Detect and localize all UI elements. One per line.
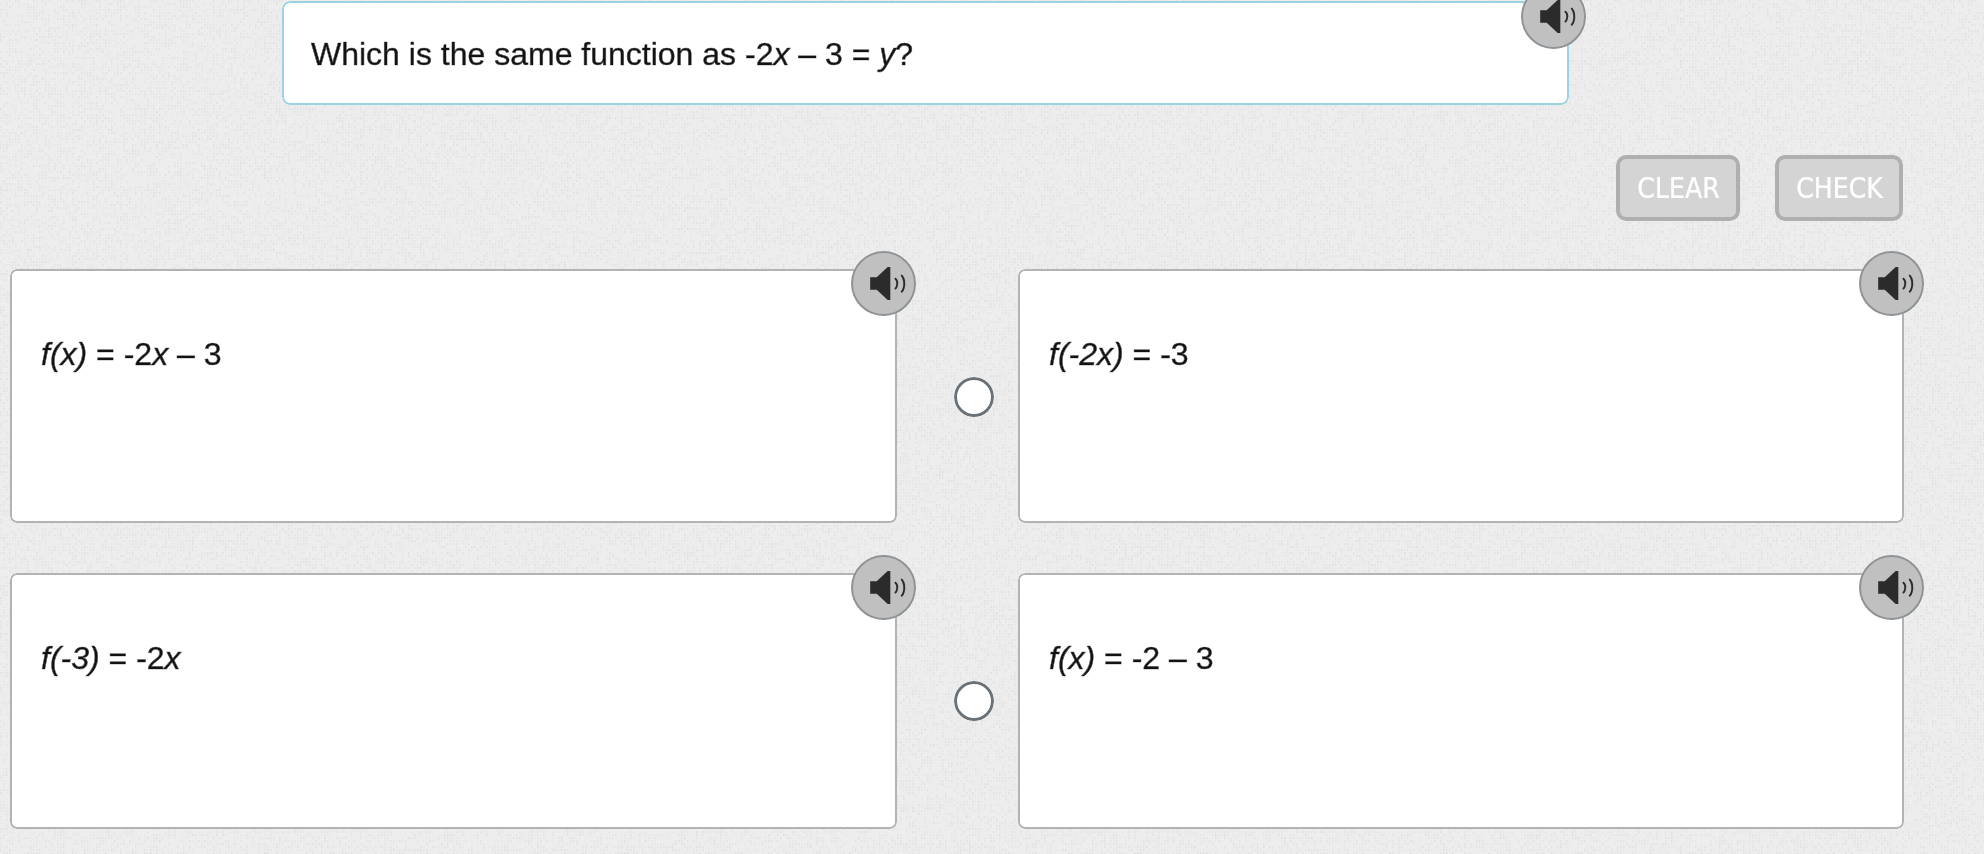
button[interactable]: Play audio [1859, 555, 1924, 620]
staticText: f(x) = -2x – 3 [41, 336, 222, 372]
staticText: f(x) = -2 – 3 [1049, 640, 1214, 676]
staticText: CLEAR [1637, 172, 1720, 205]
staticText: f(-3) = -2x [41, 640, 181, 676]
button[interactable]: f(-2x) = -3 [1018, 269, 1904, 523]
staticText: f(x) = -2 – 3 [1049, 640, 1214, 676]
staticText: Which is the same function as -2x – 3 = … [311, 36, 914, 72]
staticText: CHECK [1796, 172, 1883, 205]
button[interactable]: Select this answer [954, 681, 994, 721]
button[interactable]: CLEAR [1616, 155, 1740, 221]
button[interactable]: Select this answer [954, 377, 994, 417]
button[interactable]: f(-3) = -2x [10, 573, 897, 829]
button[interactable]: Play audio [1521, 0, 1586, 49]
button[interactable]: CHECK [1775, 155, 1903, 221]
button[interactable]: f(x) = -2 – 3 [1018, 573, 1904, 829]
staticText: f(-2x) = -3 [1049, 336, 1189, 372]
button[interactable]: Play audio [851, 555, 916, 620]
staticText: f(x) = -2x – 3 [41, 336, 222, 372]
button[interactable]: f(x) = -2x – 3 [10, 269, 897, 523]
staticText: f(-2x) = -3 [1049, 336, 1189, 372]
staticText: Which is the same function as -2x – 3 = … [311, 36, 914, 72]
staticText: f(-3) = -2x [41, 640, 181, 676]
button[interactable]: Play audio [1859, 251, 1924, 316]
button[interactable]: Play audio [851, 251, 916, 316]
